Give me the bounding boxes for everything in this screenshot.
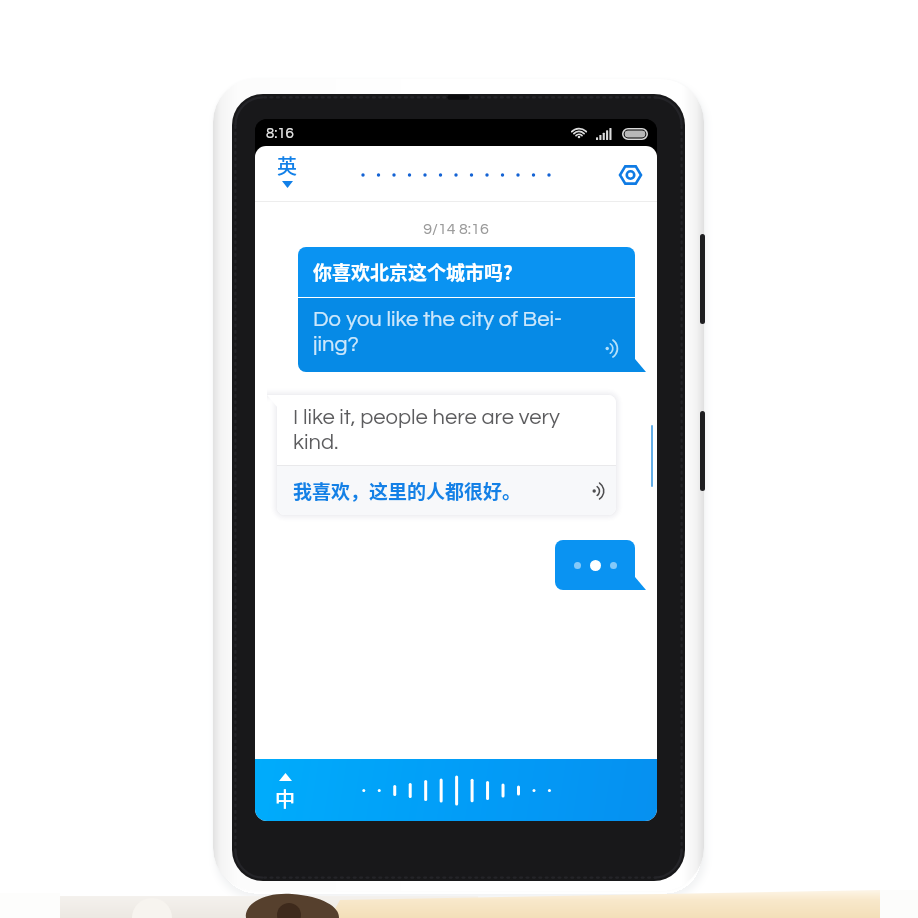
button[interactable]: Hold to speak: [255, 759, 657, 821]
button[interactable]: 英: [271, 146, 303, 193]
staticText: 8:16: [266, 126, 294, 141]
button[interactable]: 你喜欢北京这个城市吗?: [298, 247, 635, 372]
button[interactable]: Switch language: [270, 769, 300, 817]
staticText: 9/14 8:16: [255, 221, 657, 237]
button[interactable]: Settings: [613, 158, 647, 192]
button[interactable]: I like it, people here are very kind.: [277, 395, 616, 515]
staticText: 英: [277, 151, 297, 180]
staticText: I like it, people here are very kind.: [293, 406, 561, 454]
staticText: 中: [275, 784, 295, 813]
button[interactable]: Typing indicator: [555, 540, 635, 590]
staticText: Do you like the city of Bei- jing?: [313, 308, 562, 356]
staticText: 你喜欢北京这个城市吗?: [313, 258, 513, 286]
staticText: 我喜欢，这里的人都很好。: [293, 477, 522, 505]
